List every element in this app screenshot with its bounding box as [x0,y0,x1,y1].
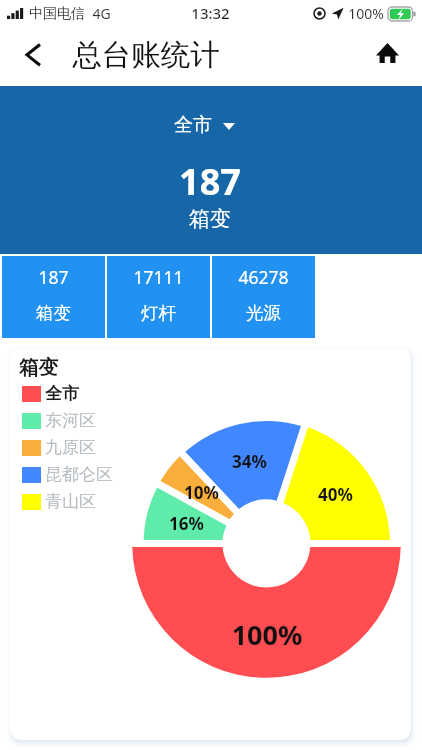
staticText: 187 [179,157,241,206]
staticText: 灯杆 [141,302,176,324]
staticText: 40% [310,483,361,506]
staticText: 青山区 [45,491,96,512]
button[interactable]: 首页 [376,43,399,63]
button[interactable]: 青山区 [19,488,96,515]
button[interactable]: 昆都仑区 [19,461,113,488]
button[interactable]: 17111 [107,256,210,338]
staticText: 昆都仑区 [45,464,113,485]
button[interactable]: 返回 [14,39,50,75]
button[interactable]: 46278 [212,256,315,338]
staticText: 4G [92,4,111,23]
staticText: 13:32 [191,3,230,23]
staticText: 中国电信 [29,5,85,23]
staticText: 46278 [238,265,289,289]
staticText: 九原区 [45,437,96,458]
staticText: 17111 [133,265,184,289]
staticText: 箱变 [189,206,231,232]
staticText: 东河区 [45,410,96,431]
staticText: 16% [161,512,212,535]
button[interactable]: 全市 [19,380,79,407]
staticText: 10% [176,481,227,504]
button[interactable]: 全市 [174,113,235,137]
staticText: 34% [224,450,275,473]
button[interactable]: 九原区 [19,434,96,461]
staticText: 光源 [246,302,281,324]
staticText: 187 [38,265,69,289]
button[interactable]: 187 [2,256,105,338]
staticText: 100% [219,616,315,653]
staticText: 全市 [45,383,79,404]
staticText: 全市 [174,113,212,137]
staticText: 总台账统计 [72,37,220,74]
staticText: 100% [348,4,384,23]
staticText: 箱变 [36,302,71,324]
staticText: 箱变 [19,355,58,380]
button[interactable]: 东河区 [19,407,96,434]
